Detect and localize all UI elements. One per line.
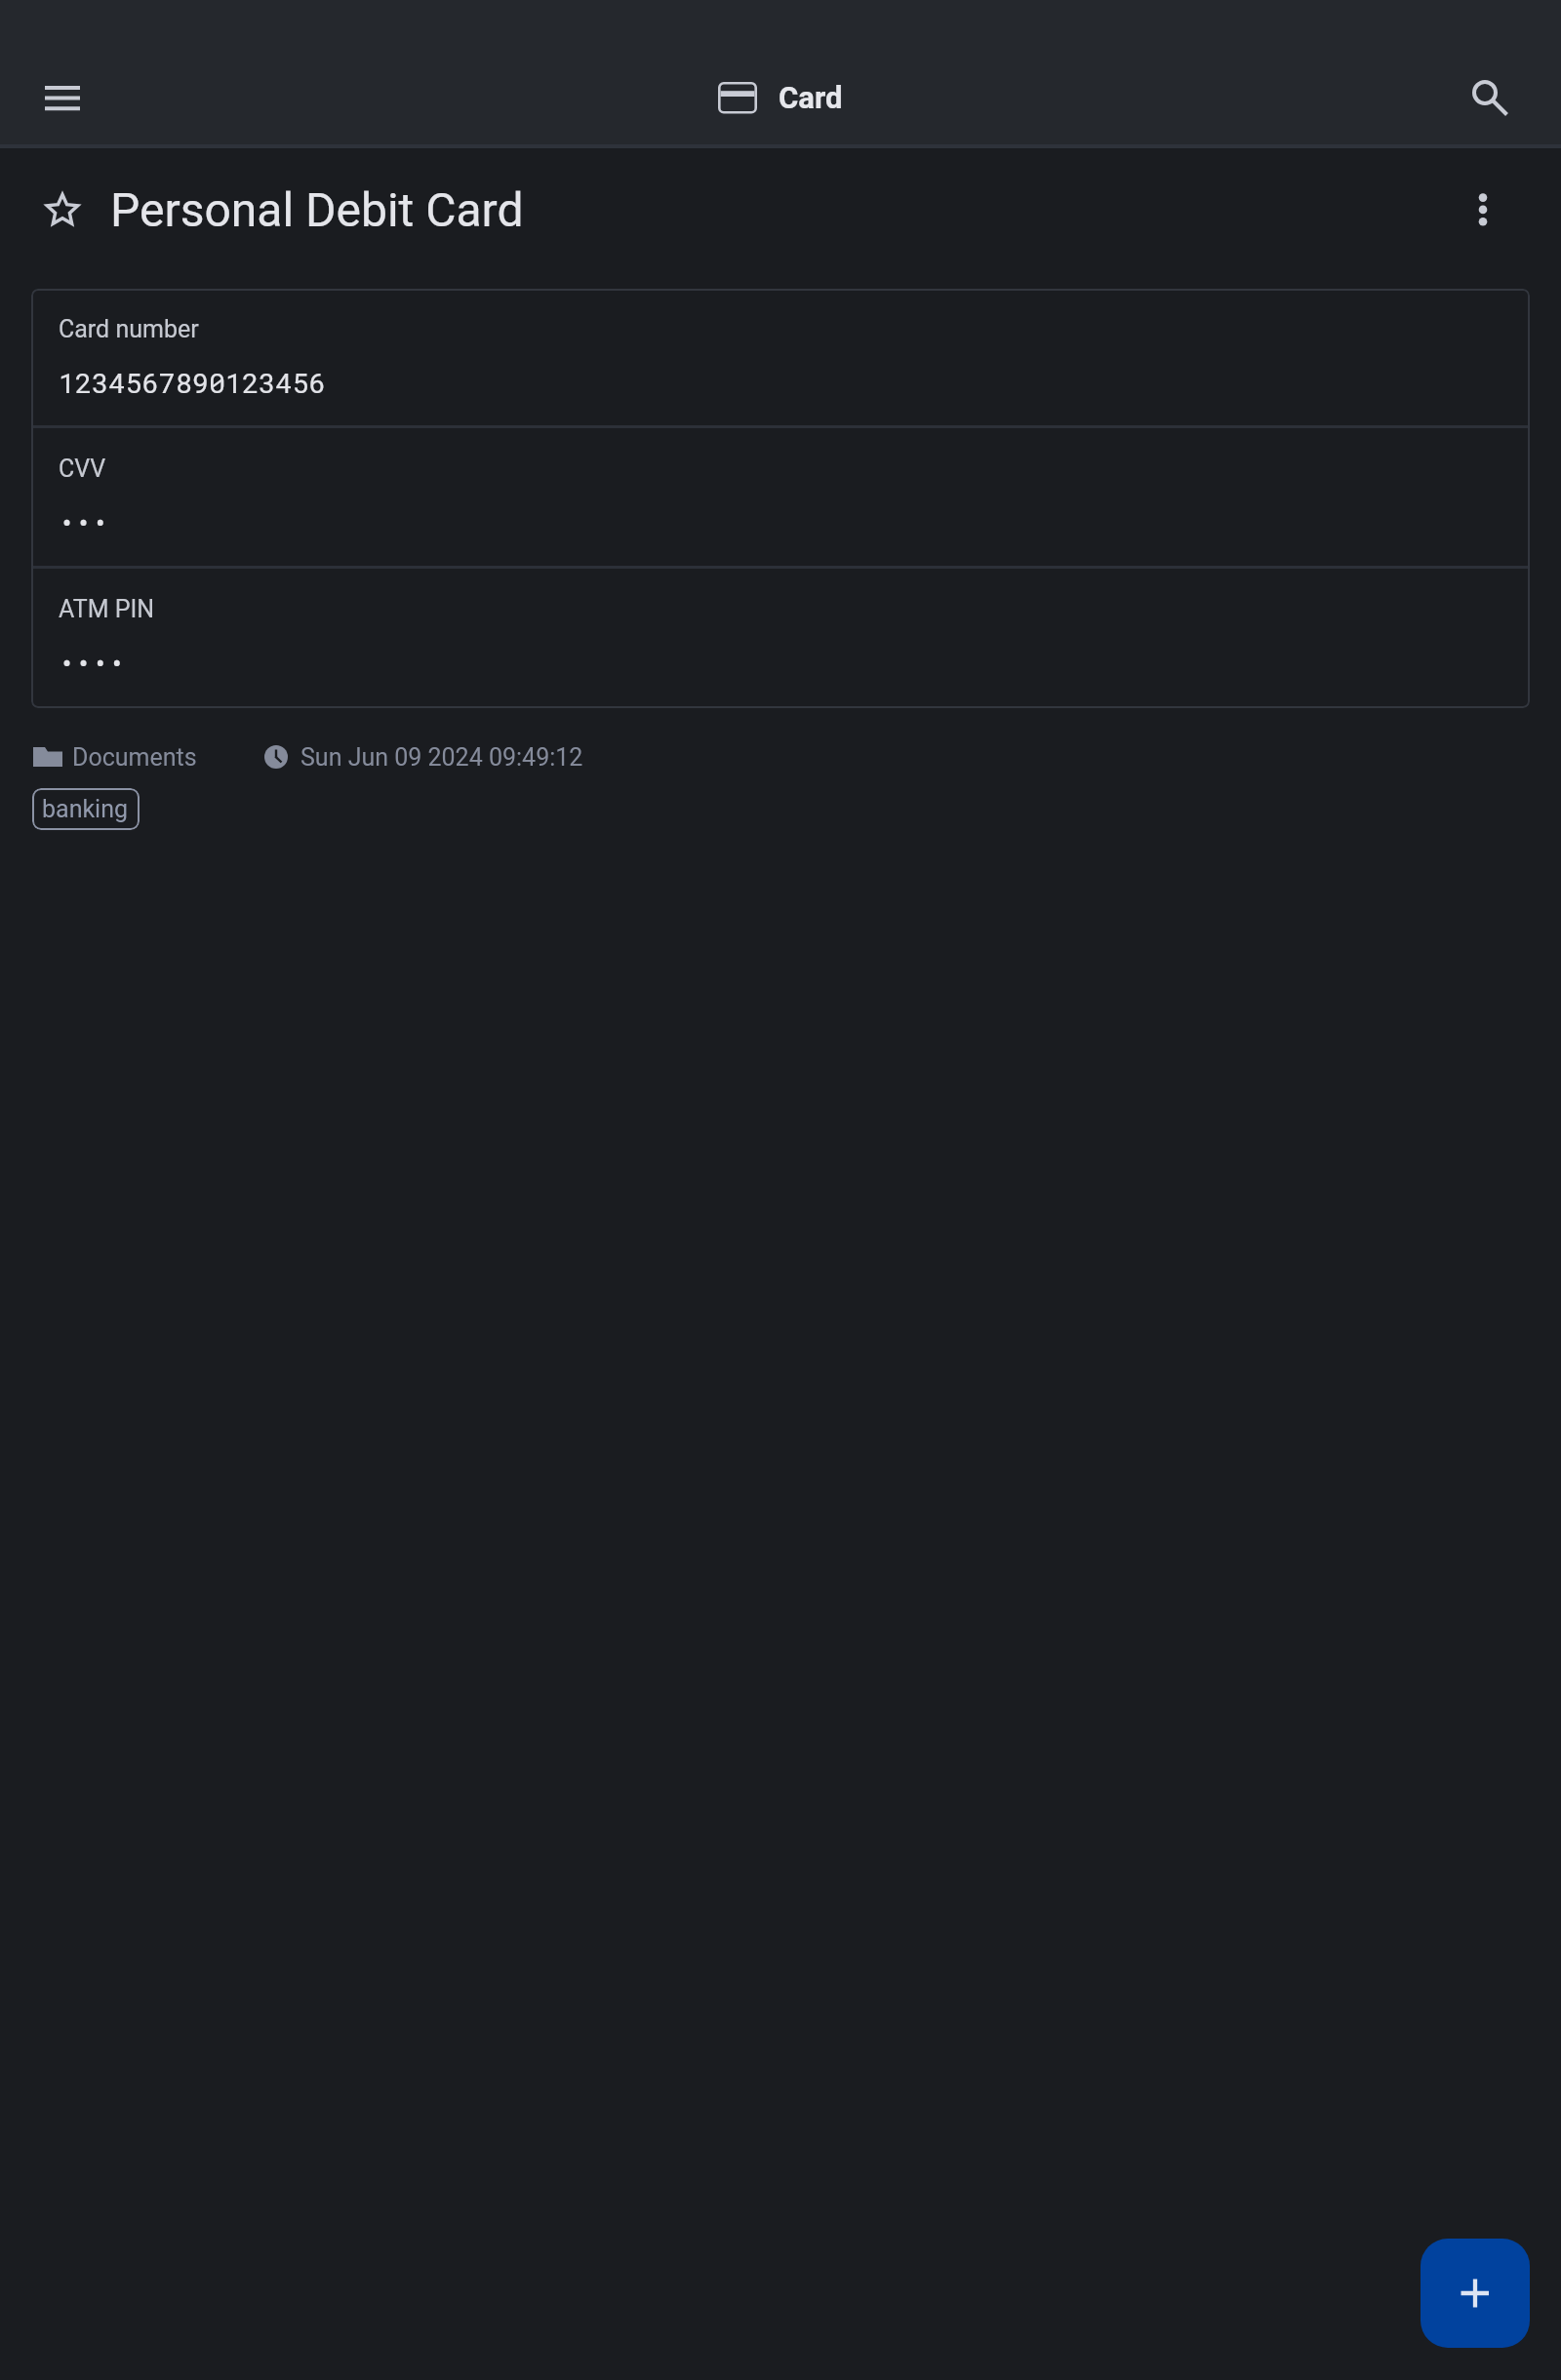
- staticText: Documents: [72, 743, 197, 772]
- staticText: •••: [59, 503, 109, 540]
- button[interactable]: Add to favorites: [16, 163, 109, 257]
- staticText: ATM PIN: [59, 595, 155, 623]
- staticText: Personal Debit Card: [110, 182, 524, 237]
- staticText: CVV: [59, 455, 106, 483]
- button[interactable]: banking: [32, 788, 140, 830]
- button[interactable]: Open navigation menu: [16, 51, 109, 144]
- staticText: ••••: [59, 644, 126, 681]
- button[interactable]: CVV: [31, 428, 1530, 566]
- button[interactable]: More options: [1436, 163, 1530, 257]
- staticText: banking: [42, 795, 129, 823]
- staticText: 1234567890123456: [59, 364, 326, 401]
- staticText: Card: [779, 80, 843, 115]
- button[interactable]: Add new item: [1421, 2239, 1530, 2348]
- button[interactable]: ATM PIN: [31, 569, 1530, 708]
- staticText: Sun Jun 09 2024 09:49:12: [300, 743, 583, 772]
- staticText: Card number: [59, 315, 199, 343]
- button[interactable]: Card number: [31, 289, 1530, 425]
- button[interactable]: Search: [1443, 51, 1537, 144]
